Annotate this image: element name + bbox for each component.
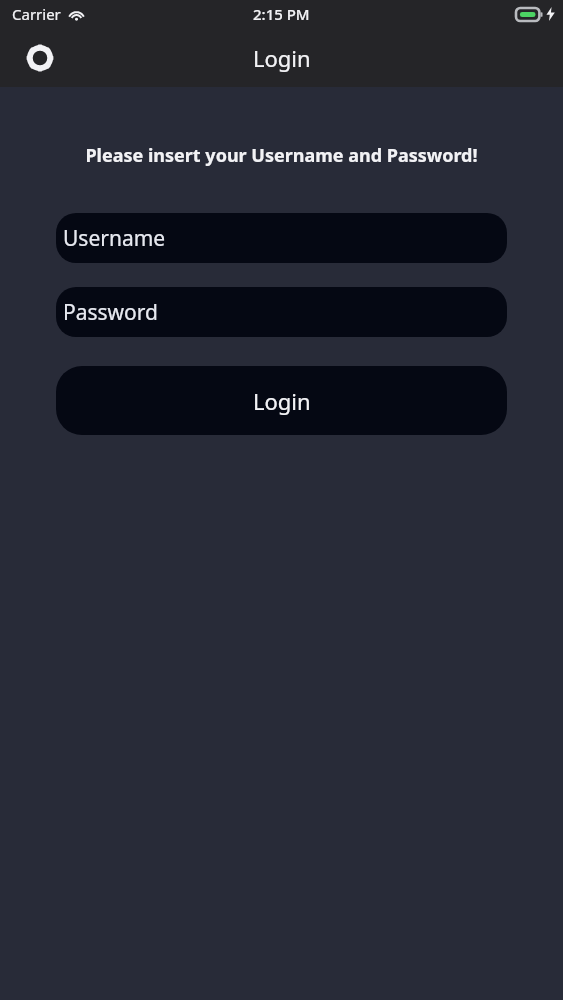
- staticText: Login: [253, 386, 311, 416]
- staticText: 2:15 PM: [253, 4, 310, 24]
- staticText: Password: [63, 298, 158, 327]
- staticText: Carrier: [12, 4, 61, 24]
- staticText: Please insert your Username and Password…: [85, 143, 478, 168]
- button[interactable]: Username: [56, 213, 507, 263]
- button[interactable]: Login: [56, 366, 507, 435]
- button[interactable]: Password: [56, 287, 507, 337]
- staticText: Login: [253, 43, 311, 73]
- button[interactable]: Settings: [18, 36, 62, 80]
- staticText: Username: [63, 224, 166, 253]
